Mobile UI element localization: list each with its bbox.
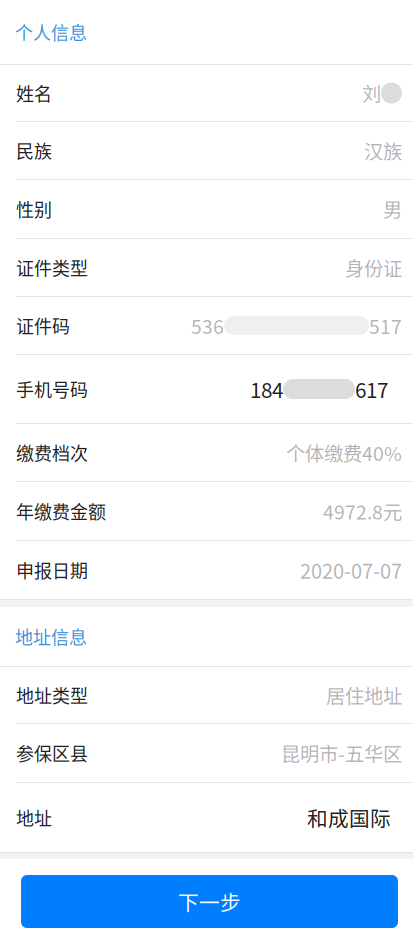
- button[interactable]: 手机号码: [0, 355, 413, 424]
- button[interactable]: 参保区县: [0, 724, 413, 783]
- staticText: 姓名: [16, 80, 52, 106]
- staticText: 184: [250, 374, 283, 404]
- staticText: 参保区县: [16, 740, 88, 766]
- staticText: 身份证: [345, 253, 402, 281]
- staticText: 男: [383, 195, 402, 223]
- staticText: 证件类型: [16, 254, 88, 281]
- staticText: 申报日期: [16, 557, 88, 583]
- staticText: 和成国际: [307, 802, 391, 832]
- button[interactable]: 证件类型: [0, 239, 413, 297]
- button[interactable]: 申报日期: [0, 541, 413, 599]
- staticText: 汉族: [364, 136, 402, 164]
- staticText: 证件码: [16, 312, 70, 339]
- staticText: 性别: [16, 196, 52, 222]
- staticText: 个人信息: [15, 19, 87, 45]
- staticText: 617: [355, 374, 388, 404]
- staticText: 地址: [16, 804, 52, 831]
- button[interactable]: 下一步: [21, 875, 398, 928]
- staticText: 517: [369, 311, 402, 339]
- staticText: 2020-07-07: [300, 555, 402, 584]
- button[interactable]: 证件码: [0, 297, 413, 355]
- staticText: 个体缴费40%: [286, 438, 402, 466]
- staticText: 年缴费金额: [16, 498, 106, 524]
- staticText: 地址信息: [15, 623, 87, 650]
- staticText: 缴费档次: [16, 439, 88, 466]
- button[interactable]: 年缴费金额: [0, 482, 413, 541]
- staticText: 536: [191, 311, 224, 339]
- button[interactable]: 地址类型: [0, 667, 413, 724]
- button[interactable]: 缴费档次: [0, 424, 413, 482]
- staticText: 民族: [16, 137, 52, 164]
- staticText: 4972.8元: [323, 497, 402, 525]
- button[interactable]: 民族: [0, 122, 413, 180]
- staticText: 居住地址: [326, 681, 402, 709]
- button[interactable]: 地址: [0, 783, 413, 852]
- button[interactable]: 性别: [0, 180, 413, 239]
- staticText: 昆明市-五华区: [281, 739, 402, 767]
- button[interactable]: 姓名: [0, 65, 413, 122]
- staticText: 手机号码: [16, 376, 88, 402]
- staticText: 下一步: [178, 886, 241, 916]
- staticText: 地址类型: [16, 682, 88, 708]
- staticText: 刘: [362, 79, 381, 107]
